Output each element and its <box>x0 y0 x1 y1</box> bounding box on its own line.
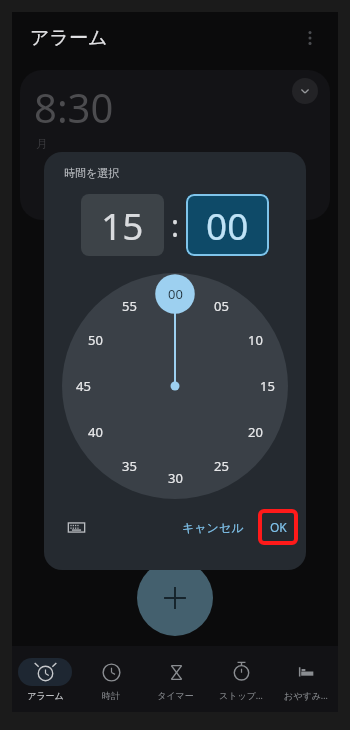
button[interactable]: タイマー <box>143 646 208 712</box>
button[interactable]: 05 <box>206 291 236 321</box>
staticText: 15 <box>260 377 275 395</box>
staticText: 月 <box>36 136 48 151</box>
staticText: 55 <box>122 297 137 315</box>
button[interactable]: 00 <box>186 194 269 256</box>
staticText: 40 <box>88 423 103 441</box>
staticText: 25 <box>214 457 229 475</box>
staticText: 50 <box>88 331 103 349</box>
staticText: 05 <box>214 297 229 315</box>
button[interactable]: 15 <box>252 371 282 401</box>
button[interactable]: Switch to text input <box>58 509 94 545</box>
button[interactable]: 30 <box>160 463 190 493</box>
staticText: おやすみ… <box>284 689 328 701</box>
staticText: タイマー <box>157 690 194 701</box>
staticText: OK <box>270 519 287 535</box>
button[interactable]: 45 <box>68 371 98 401</box>
button[interactable]: おやすみ… <box>273 646 338 712</box>
staticText: 時計 <box>102 690 120 701</box>
button[interactable]: 25 <box>206 451 236 481</box>
button[interactable]: 時計 <box>78 646 143 712</box>
staticText: 8:30 <box>34 80 114 134</box>
button[interactable]: 55 <box>114 291 144 321</box>
staticText: 45 <box>76 377 91 395</box>
button[interactable]: Expand alarm <box>292 78 318 104</box>
staticText: 30 <box>168 469 183 487</box>
button[interactable]: 50 <box>80 325 110 355</box>
button[interactable]: キャンセル <box>172 514 254 541</box>
button[interactable]: 35 <box>114 451 144 481</box>
staticText: 20 <box>248 423 263 441</box>
staticText: 時間を選択 <box>64 166 120 180</box>
button[interactable]: アラーム <box>12 646 78 712</box>
button[interactable]: More options <box>290 18 330 58</box>
staticText: ストップ… <box>219 689 263 701</box>
staticText: 10 <box>248 331 263 349</box>
staticText: 35 <box>122 457 137 475</box>
staticText: キャンセル <box>182 520 244 535</box>
button[interactable]: 40 <box>80 417 110 447</box>
button[interactable]: Add alarm <box>137 560 213 636</box>
staticText: アラーム <box>30 26 108 50</box>
staticText: 15 <box>101 200 144 250</box>
staticText: 00 <box>168 285 183 303</box>
staticText: : <box>171 205 180 246</box>
button[interactable]: 10 <box>240 325 270 355</box>
button[interactable]: 00 <box>160 279 190 309</box>
button[interactable]: 15 <box>81 194 164 256</box>
button[interactable]: OK <box>262 513 294 541</box>
staticText: 00 <box>206 200 249 250</box>
button[interactable]: 20 <box>240 417 270 447</box>
staticText: アラーム <box>27 690 64 701</box>
button[interactable]: 8:30 <box>20 70 330 220</box>
button[interactable]: ストップ… <box>208 646 273 712</box>
